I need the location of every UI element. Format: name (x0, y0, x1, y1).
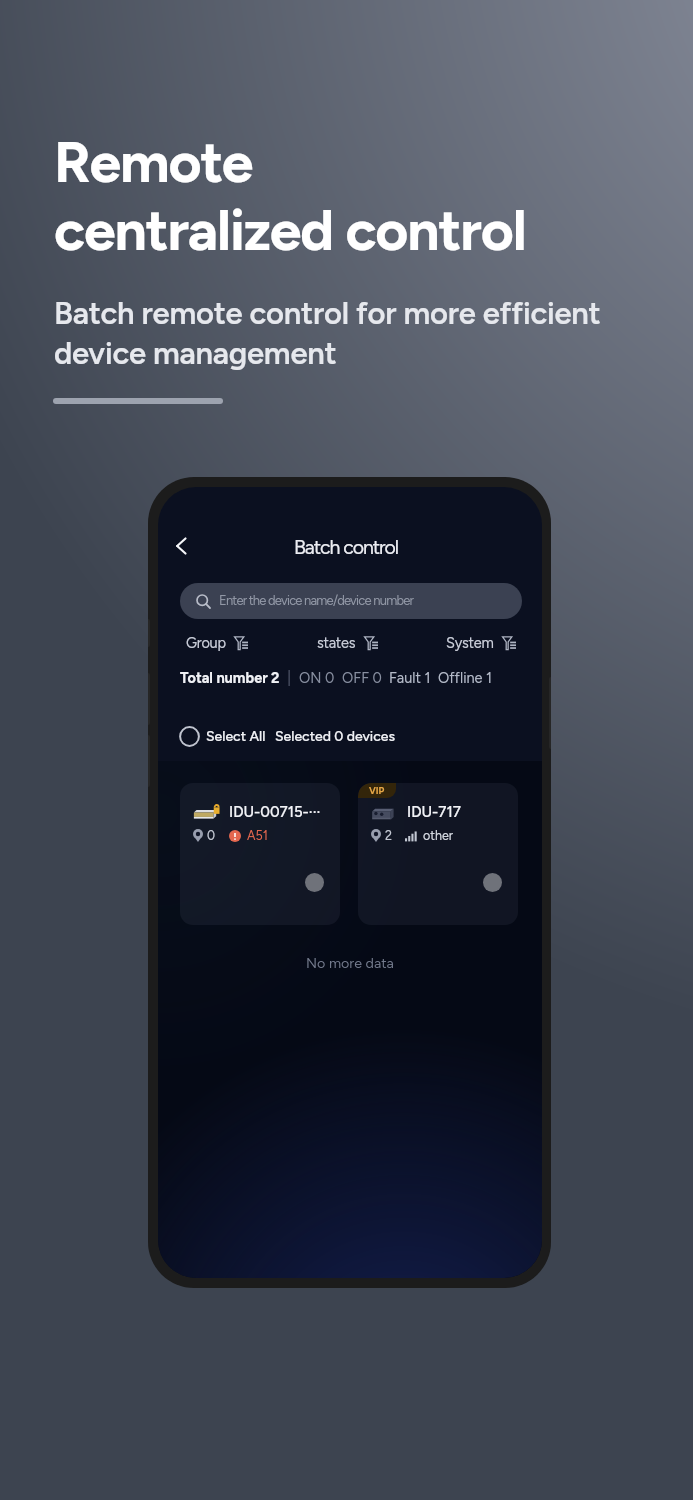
button[interactable]: Power toggle (483, 873, 502, 892)
staticText: Enter the device name/device number (219, 593, 414, 609)
staticText: Batch remote control for more efficient … (54, 295, 601, 372)
staticText: 2 (385, 828, 392, 843)
button[interactable]: Power toggle (305, 873, 324, 892)
staticText: Selected 0 devices (275, 728, 395, 745)
staticText: Select All (206, 728, 266, 745)
staticText: IDU-00715-··· (229, 803, 321, 821)
staticText: other (423, 828, 454, 843)
staticText: VIP (369, 785, 385, 796)
staticText: Batch control (294, 535, 399, 558)
button[interactable]: Back (164, 530, 196, 562)
staticText: No more data (306, 954, 394, 971)
staticText: Offline 1 (438, 669, 493, 686)
staticText: states (317, 634, 356, 651)
staticText: OFF 0 (342, 669, 382, 686)
staticText: | (280, 669, 299, 686)
staticText: 0 (207, 828, 216, 843)
staticText: Group (186, 634, 226, 651)
staticText: Fault 1 (389, 669, 431, 686)
button[interactable]: Enter the device name/device number (180, 583, 522, 619)
staticText: A51 (247, 828, 268, 843)
button[interactable]: Group (186, 634, 248, 651)
button[interactable]: states (317, 634, 378, 651)
staticText: ON 0 (299, 669, 335, 686)
staticText: Total number 2 (180, 669, 280, 686)
button[interactable]: VIP (358, 783, 518, 925)
button[interactable]: IDU-00715-··· (180, 783, 340, 925)
staticText: IDU-717 (407, 803, 461, 821)
staticText: System (446, 634, 494, 651)
button[interactable]: System (446, 634, 516, 651)
staticText: Remote centralized control (54, 128, 526, 264)
button[interactable]: Select All (179, 726, 395, 747)
